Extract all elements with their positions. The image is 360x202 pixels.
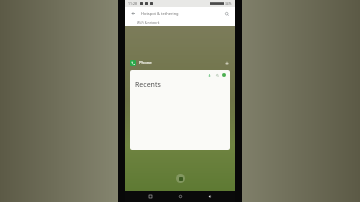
button[interactable]: Search: [222, 9, 231, 18]
button[interactable]: Voice search: [130, 70, 230, 150]
button[interactable]: Back: [129, 9, 138, 18]
button[interactable]: Home: [176, 174, 185, 183]
button[interactable]: Account: [222, 73, 226, 77]
button[interactable]: Voice search: [206, 72, 212, 78]
button[interactable]: Recent apps: [146, 192, 155, 201]
staticText: Phone: [139, 60, 152, 66]
button[interactable]: Lock task: [223, 59, 230, 66]
staticText: Wi-Fi & network: [137, 21, 160, 25]
button[interactable]: Search contacts: [214, 72, 220, 78]
staticText: Hotspot & tethering: [141, 11, 179, 16]
button[interactable]: Home: [176, 192, 185, 201]
button[interactable]: Phone app icon: [130, 60, 136, 66]
button[interactable]: Back: [205, 192, 214, 201]
staticText: 34%: [225, 2, 232, 6]
staticText: Recents: [135, 80, 161, 90]
button[interactable]: Back: [125, 7, 235, 19]
staticText: 11:28: [128, 1, 137, 6]
